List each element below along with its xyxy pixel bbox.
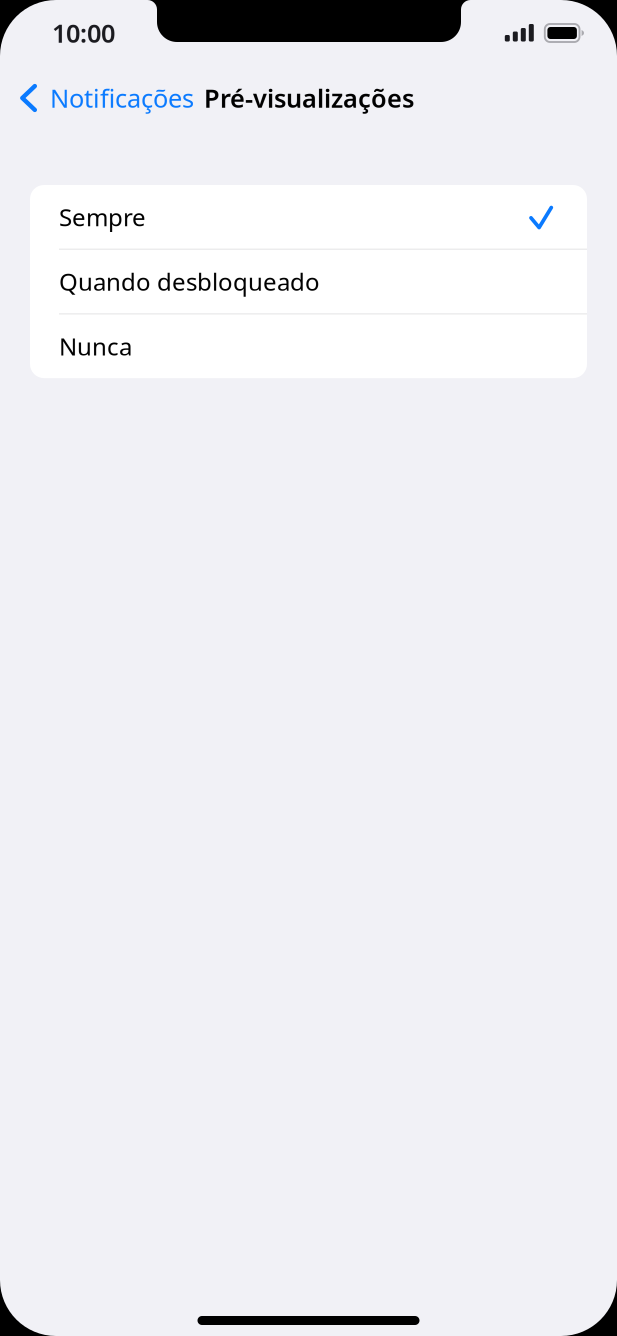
staticText: Notificações — [50, 81, 194, 115]
staticText: Quando desbloqueado — [59, 266, 320, 297]
button[interactable]: Quando desbloqueado — [30, 250, 587, 313]
button[interactable]: Nunca — [30, 314, 587, 378]
button[interactable]: Sempre — [30, 185, 587, 249]
staticText: Nunca — [59, 330, 132, 362]
staticText: 10:00 — [52, 16, 115, 50]
button[interactable]: Notificações — [0, 75, 204, 121]
staticText: Sempre — [59, 201, 146, 233]
staticText: Pré-visualizações — [204, 81, 414, 115]
